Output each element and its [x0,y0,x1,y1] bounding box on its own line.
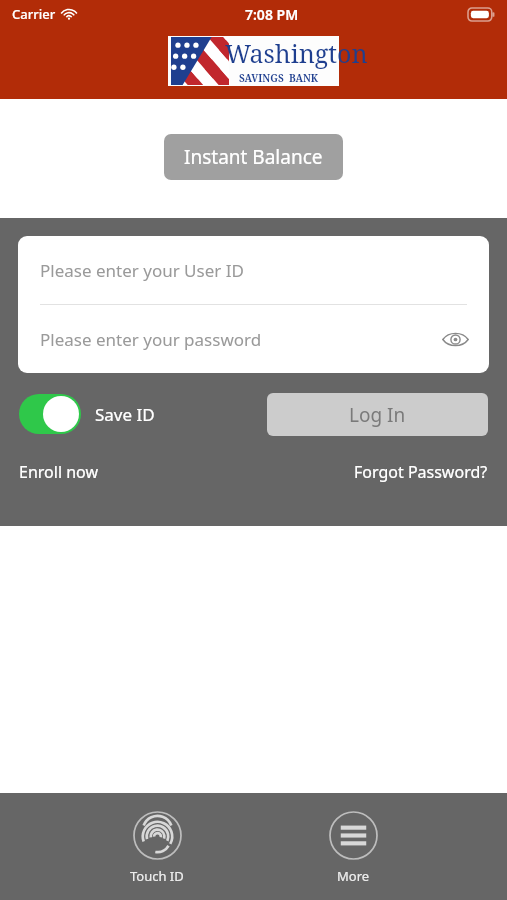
staticText: Please enter your User ID [40,259,244,282]
staticText: SAVINGS BANK [239,71,319,85]
other: More [329,811,378,860]
button[interactable]: Instant Balance [164,134,343,180]
button[interactable]: Forgot Password? [354,461,488,483]
staticText: Log In [349,402,406,428]
button[interactable]: Washington [168,36,339,86]
staticText: More [337,867,370,885]
button[interactable]: Touch ID [120,809,194,887]
button[interactable]: Please enter your User ID [18,236,489,304]
staticText: Please enter your password [40,328,262,351]
staticText: Save ID [95,403,155,426]
button[interactable]: Log In [267,393,488,436]
button[interactable]: Please enter your password [18,305,489,373]
button[interactable]: Show password [437,321,473,357]
staticText: Washington [225,36,368,70]
staticText: Forgot Password? [354,461,488,483]
staticText: Instant Balance [184,144,323,170]
button[interactable]: Save ID [19,394,155,434]
staticText: 7:08 PM [245,5,299,24]
other: Touch ID [133,811,182,860]
staticText: Touch ID [130,867,184,885]
staticText: Carrier [12,5,56,23]
button[interactable]: Enroll now [19,461,98,483]
button[interactable]: More [319,809,388,887]
staticText: Enroll now [19,461,98,483]
button[interactable] [19,394,81,434]
